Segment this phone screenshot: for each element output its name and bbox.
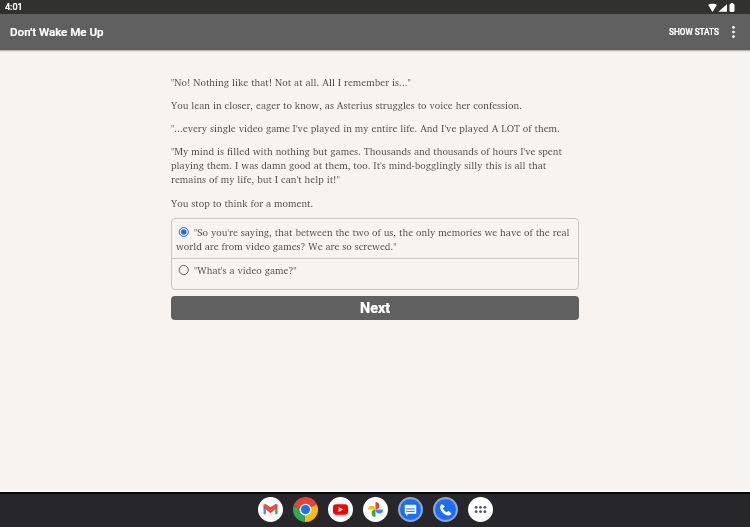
button[interactable]: "What's a video game?" <box>171 259 579 290</box>
staticText: You lean in closer, eager to know, as As… <box>171 97 522 113</box>
button[interactable]: Next <box>171 296 579 320</box>
button[interactable]: SHOW STATS <box>661 18 720 46</box>
button[interactable]: YouTube <box>323 492 358 527</box>
staticText: Next <box>360 300 391 317</box>
button[interactable]: More options <box>720 19 746 45</box>
staticText: 4:01 <box>5 2 23 13</box>
button[interactable]: All apps <box>463 492 498 527</box>
button[interactable]: "So you're saying, that between the two … <box>171 218 579 258</box>
button[interactable]: Gmail <box>253 492 288 527</box>
button[interactable]: Photos <box>358 492 393 527</box>
button[interactable]: Chrome <box>288 492 323 527</box>
staticText: "...every single video game I've played … <box>171 120 560 136</box>
button[interactable]: Messages <box>393 492 428 527</box>
button[interactable]: Phone <box>428 492 463 527</box>
staticText: You stop to think for a moment. <box>171 195 314 211</box>
staticText: SHOW STATS <box>669 27 719 37</box>
staticText: "My mind is filled with nothing but game… <box>171 143 579 188</box>
staticText: "What's a video game?" <box>176 262 297 278</box>
staticText: "No! Nothing like that! Not at all. All … <box>171 74 411 90</box>
staticText: "So you're saying, that between the two … <box>176 224 573 255</box>
staticText: Don't Wake Me Up <box>10 25 104 39</box>
